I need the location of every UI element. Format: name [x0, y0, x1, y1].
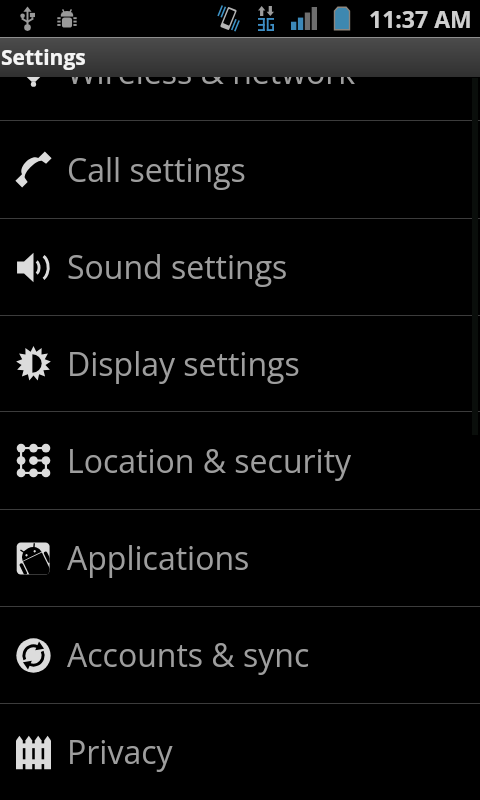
button[interactable]: Accounts & sync: [0, 607, 480, 704]
other: 3G data: [258, 6, 274, 31]
other: USB connected: [19, 6, 36, 32]
other: Vibrate mode: [214, 5, 243, 32]
other: Signal strength: [291, 7, 317, 30]
staticText: Sound settings: [67, 245, 288, 289]
button[interactable]: Privacy: [0, 704, 480, 800]
button[interactable]: Location & security: [0, 412, 480, 510]
staticText: Settings: [1, 43, 86, 72]
staticText: Display settings: [67, 342, 300, 386]
staticText: 11:37 AM: [369, 3, 472, 34]
button[interactable]: Sound settings: [0, 219, 480, 316]
button[interactable]: Call settings: [0, 121, 480, 219]
staticText: Call settings: [67, 148, 246, 192]
other: Battery: [334, 6, 350, 31]
staticText: Accounts & sync: [67, 633, 310, 677]
staticText: Wireless & network: [67, 50, 356, 94]
staticText: Location & security: [67, 439, 352, 483]
button[interactable]: Display settings: [0, 316, 480, 412]
staticText: Privacy: [67, 730, 173, 774]
button[interactable]: Applications: [0, 510, 480, 607]
button[interactable]: Wireless & network: [0, 24, 480, 121]
staticText: Applications: [67, 536, 250, 580]
other: USB debugging: [56, 8, 78, 30]
